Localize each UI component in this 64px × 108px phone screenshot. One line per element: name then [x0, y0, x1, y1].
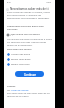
staticText: Dejarlo como está	[11, 63, 30, 66]
button[interactable]: Dejarlo como está	[7, 63, 52, 66]
staticText: Consejo	[7, 85, 16, 88]
button[interactable]: Revisar cada ajuste	[7, 58, 52, 61]
staticText: 9:41	[7, 1, 11, 4]
staticText: Comprueba que estos datos sean correctos…	[7, 25, 52, 31]
staticText: Revisar cada ajuste	[11, 58, 31, 61]
button[interactable]: Continuar	[15, 71, 44, 77]
button[interactable]: Privacy	[7, 33, 52, 36]
staticText: Los ajustes que elijas se aplicarán a to…	[7, 38, 52, 47]
staticText: Necesitamos saber más de ti	[10, 7, 49, 11]
staticText: Selecciona una opción	[7, 48, 32, 51]
staticText: Activar todo ahora	[11, 53, 30, 56]
staticText: Continuar	[24, 73, 36, 76]
button[interactable]: Activar todo ahora	[7, 53, 52, 56]
staticText: 100%	[46, 1, 52, 4]
staticText: ¿Qué ocurre con tus datos?	[10, 33, 40, 36]
other: Account	[6, 8, 9, 11]
staticText: para saber cómo se usan estos datos en l…	[7, 92, 52, 98]
staticText: Ver	[7, 89, 11, 92]
staticText: Para continuar usando tu cuenta, revisa …	[7, 11, 52, 20]
button[interactable]: Ayuda de Google	[11, 89, 29, 92]
